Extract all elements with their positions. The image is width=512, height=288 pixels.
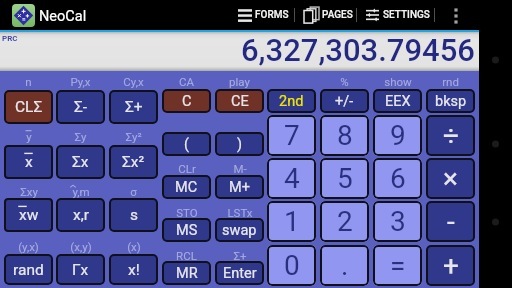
button[interactable]: × [426,158,475,199]
button[interactable]: SETTINGS [363,0,436,30]
staticText: LSTx [227,206,253,219]
staticText: Σ- [74,98,88,116]
button[interactable]: C [162,89,211,113]
button[interactable]: MS [162,218,211,242]
button[interactable]: xw [4,198,53,232]
button[interactable]: ( [162,132,211,156]
button[interactable]: MR [162,261,211,285]
button[interactable]: Enter [215,261,264,285]
button[interactable]: CE [215,89,264,113]
staticText: 6 [390,162,406,195]
staticText: CLr [178,162,196,175]
button[interactable]: + [426,245,475,286]
staticText: 6,327,303.79456 [241,32,475,66]
button[interactable]: EEX [373,89,422,113]
button[interactable]: Σx [56,145,105,179]
staticText: Σx² [122,153,145,171]
staticText: bksp [435,93,467,110]
staticText: n [25,75,32,88]
staticText: STO [176,206,198,219]
staticText: 0 [284,249,300,282]
staticText: ( [184,136,189,153]
button[interactable]: +/- [320,89,369,113]
staticText: CLΣ [15,98,43,116]
staticText: 3 [390,205,406,238]
button[interactable]: 6 [373,158,422,199]
staticText: rand [13,261,44,279]
button[interactable]: 3 [373,201,422,242]
button[interactable]: CLΣ [4,90,53,124]
staticText: Σy [74,130,87,143]
button[interactable]: ) [215,132,264,156]
button[interactable]: = [373,245,422,286]
staticText: RCL [176,249,197,262]
staticText: swap [222,222,257,239]
button[interactable]: Σ+ [109,90,158,124]
button[interactable]: 8 [320,115,369,156]
staticText: M+ [229,179,250,196]
button[interactable]: rand [4,254,53,285]
button[interactable]: 1 [267,201,316,242]
staticText: Σ+ [125,98,143,116]
button[interactable]: x [4,145,53,179]
staticText: x,r [73,206,89,224]
button[interactable]: More options [447,0,465,30]
staticText: rnd [442,75,459,88]
staticText: CA [179,75,194,88]
staticText: Cy,x [123,75,144,88]
button[interactable]: Σx² [109,145,158,179]
staticText: Enter [223,265,257,282]
staticText: Σ+ [233,249,247,262]
staticText: 8 [337,119,353,152]
staticText: FORMS [255,9,289,21]
button[interactable]: ÷ [426,115,475,156]
staticText: PAGES [322,9,353,21]
staticText: +/- [335,93,354,110]
button[interactable]: bksp [426,89,475,113]
staticText: ÷ [443,119,459,152]
staticText: σ [130,185,137,198]
button[interactable]: Γx [56,254,105,285]
staticText: C [182,93,192,110]
button[interactable]: NeoCal home [6,0,40,30]
staticText: Σy² [125,130,142,143]
staticText: 2 [337,205,353,238]
staticText: x [25,153,33,171]
staticText: + [443,249,459,282]
button[interactable]: . [320,245,369,286]
button[interactable]: FORMS [236,0,295,30]
staticText: M- [233,162,247,175]
staticText: - [447,205,455,238]
staticText: s [130,206,138,224]
button[interactable]: 7 [267,115,316,156]
button[interactable]: M+ [215,175,264,199]
staticText: 4 [284,162,300,195]
staticText: Py,x [70,75,91,88]
button[interactable]: 5 [320,158,369,199]
button[interactable]: swap [215,218,264,242]
staticText: ) [237,136,243,153]
button[interactable]: Σ- [56,90,105,124]
staticText: play [229,75,250,88]
staticText: PRC [2,34,18,43]
staticText: 5 [337,162,353,195]
button[interactable]: 2 [320,201,369,242]
button[interactable]: 4 [267,158,316,199]
staticText: SETTINGS [383,9,430,21]
button[interactable]: PAGES [301,0,359,30]
button[interactable]: 0 [267,245,316,286]
button[interactable]: s [109,198,158,232]
staticText: . [341,249,349,282]
staticText: 9 [390,119,406,152]
button[interactable]: 9 [373,115,422,156]
button[interactable]: - [426,201,475,242]
staticText: show [384,75,412,88]
staticText: CE [231,93,249,110]
staticText: Σx [72,153,89,171]
staticText: MC [175,179,198,196]
button[interactable]: x,r [56,198,105,232]
button[interactable]: x! [109,254,158,285]
button[interactable]: MC [162,175,211,199]
staticText: Γx [72,261,89,279]
button[interactable]: 2nd [267,89,316,113]
